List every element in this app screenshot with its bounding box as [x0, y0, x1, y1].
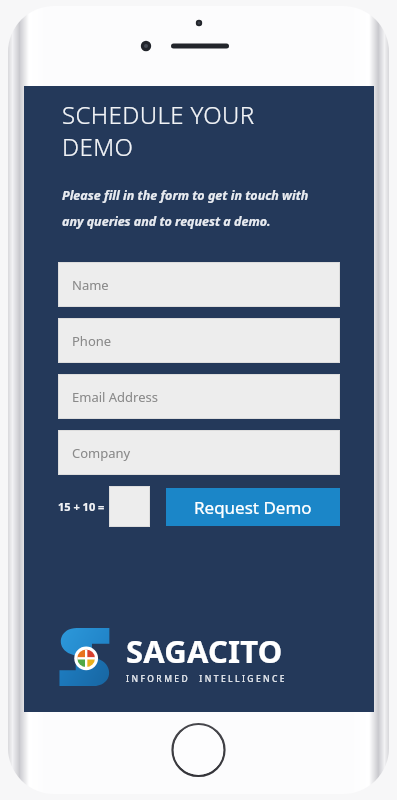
staticText: SCHEDULE YOUR DEMO	[62, 98, 255, 163]
button[interactable]: Email Address	[58, 374, 340, 419]
button[interactable]: Company	[58, 430, 340, 475]
staticText: Request Demo	[194, 496, 312, 519]
staticText: Please fill in the form to get in touch …	[62, 187, 309, 230]
staticText: 15 + 10 =	[58, 499, 105, 514]
staticText: SAGACITO	[126, 630, 283, 672]
staticText: INFORMED INTELLIGENCE	[126, 673, 287, 685]
button[interactable]: Phone	[58, 318, 340, 363]
staticText: Company	[72, 444, 131, 462]
staticText: Phone	[72, 332, 112, 350]
staticText: Email Address	[72, 388, 158, 406]
staticText: Name	[72, 276, 109, 294]
button[interactable]: Captcha answer	[109, 486, 150, 527]
button[interactable]: Name	[58, 262, 340, 307]
button[interactable]: Request Demo	[166, 488, 340, 526]
